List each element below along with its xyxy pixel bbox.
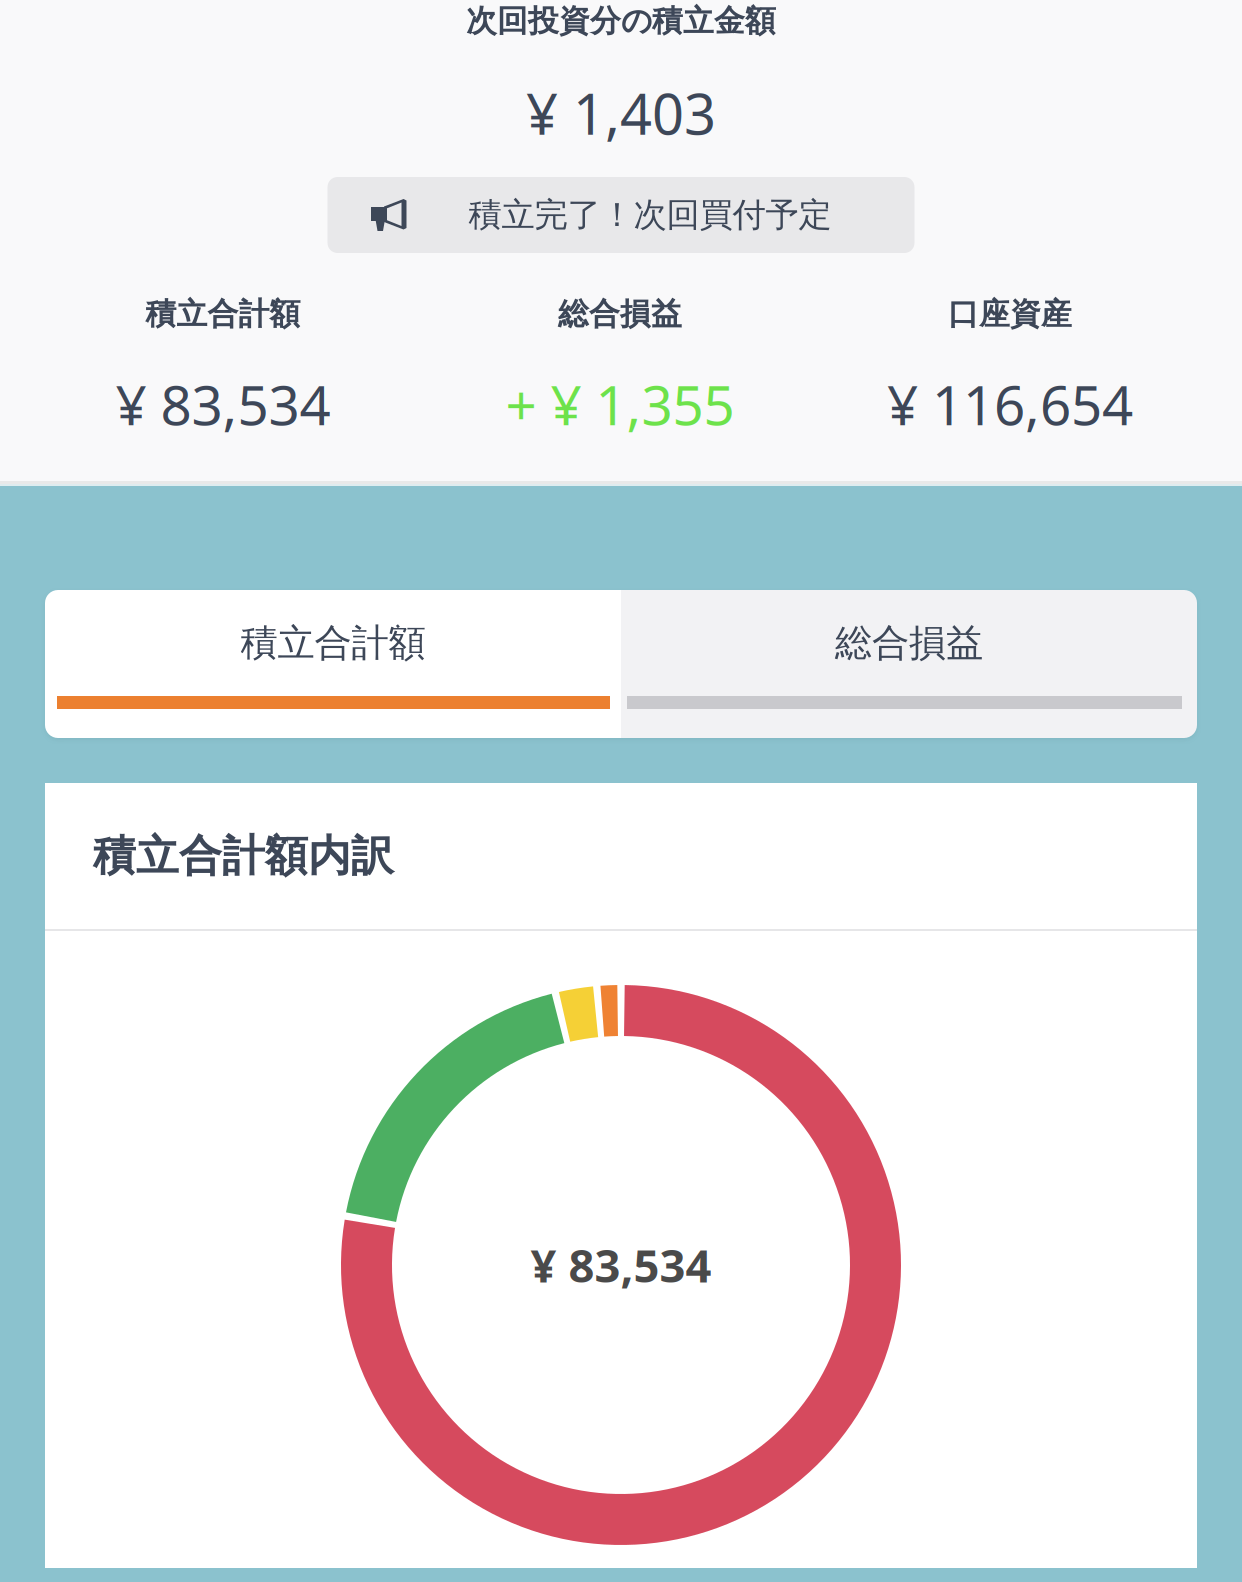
staticText: 総合損益 — [558, 295, 682, 333]
staticText: ¥ 116,654 — [887, 368, 1133, 440]
staticText: ¥ 83,534 — [530, 1235, 711, 1295]
staticText: ¥ 83,534 — [115, 368, 330, 440]
button[interactable]: 積立合計額 — [45, 590, 621, 738]
staticText: 積立完了！次回買付予定 — [468, 194, 831, 235]
button[interactable]: 積立完了！次回買付予定 — [327, 177, 914, 253]
staticText: 総合損益 — [835, 620, 983, 666]
staticText: 次回投資分の積立金額 — [466, 2, 776, 40]
staticText: 口座資産 — [948, 295, 1072, 333]
button[interactable]: 総合損益 — [621, 590, 1197, 738]
staticText: 積立合計額 — [240, 620, 425, 666]
staticText: + ¥ 1,355 — [505, 368, 734, 440]
staticText: 積立合計額 — [145, 295, 300, 333]
staticText: ¥ 1,403 — [526, 76, 716, 150]
staticText: 積立合計額内訳 — [93, 830, 394, 882]
